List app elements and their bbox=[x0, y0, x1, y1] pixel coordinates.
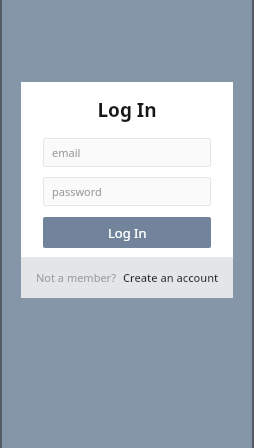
staticText: Log In bbox=[97, 97, 157, 123]
staticText: password bbox=[52, 184, 102, 199]
button[interactable]: Create an account bbox=[123, 266, 219, 289]
staticText: email bbox=[52, 145, 81, 160]
button[interactable]: Log In bbox=[43, 217, 211, 248]
staticText: Log In bbox=[108, 224, 147, 242]
button[interactable]: Password input bbox=[43, 177, 211, 206]
button[interactable]: Email input bbox=[43, 138, 211, 167]
staticText: Not a member? bbox=[36, 270, 116, 285]
staticText: Create an account bbox=[123, 270, 219, 285]
